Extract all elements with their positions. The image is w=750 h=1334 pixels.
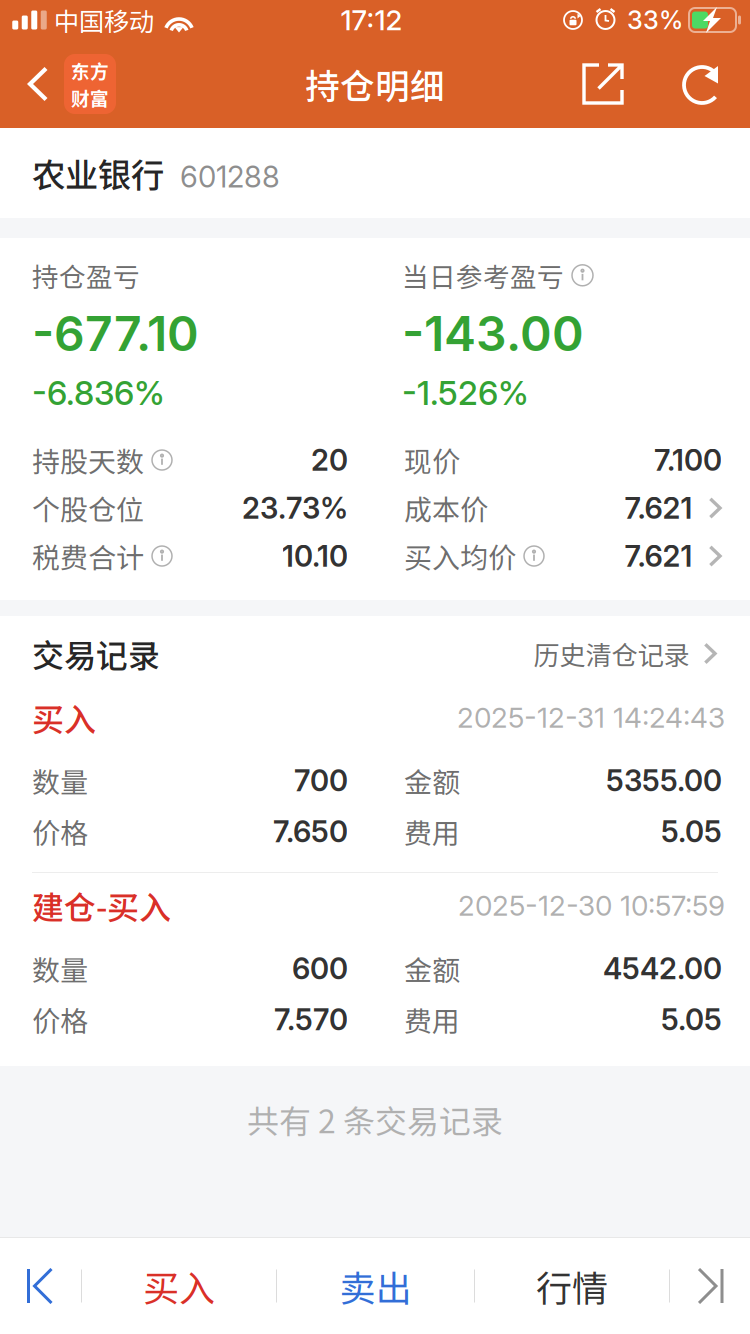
staticText: 个股仓位 <box>32 488 144 528</box>
staticText: 7.100 <box>654 442 722 478</box>
staticText: 10.10 <box>282 538 348 574</box>
staticText: 卖出 <box>339 1260 411 1312</box>
staticText: 4542.00 <box>603 951 722 986</box>
button[interactable]: 行情 <box>475 1238 669 1334</box>
staticText: 财富 <box>71 84 109 111</box>
staticText: 买入 <box>32 694 96 741</box>
staticText: 现价 <box>404 440 460 480</box>
staticText: 交易记录 <box>32 630 160 677</box>
staticText: 共有 2 条交易记录 <box>247 1096 503 1142</box>
staticText: 600 <box>292 951 348 986</box>
staticText: 17:12 <box>340 3 402 37</box>
staticText: 持仓盈亏 <box>32 256 140 295</box>
staticText: 历史清仓记录 <box>534 635 690 672</box>
staticText: 税费合计 <box>32 536 144 576</box>
staticText: 成本价 <box>404 488 488 528</box>
button[interactable]: Last <box>670 1238 750 1334</box>
staticText: 金额 <box>404 948 460 989</box>
staticText: 33% <box>627 5 683 35</box>
staticText: 2025-12-31 14:24:43 <box>457 701 725 734</box>
staticText: 中国移动 <box>54 2 154 38</box>
staticText: 价格 <box>32 811 88 852</box>
staticText: 7.621 <box>625 538 693 574</box>
staticText: 20 <box>311 442 348 478</box>
staticText: 行情 <box>536 1260 608 1312</box>
button[interactable]: 历史清仓记录 <box>534 622 717 684</box>
staticText: 5.05 <box>661 814 722 849</box>
button[interactable]: First <box>0 1238 81 1334</box>
staticText: 费用 <box>404 999 460 1040</box>
button[interactable]: 现价 <box>404 436 722 484</box>
staticText: 价格 <box>32 999 88 1040</box>
button[interactable]: Back <box>0 40 116 128</box>
staticText: 持仓明细 <box>305 59 445 109</box>
staticText: 5355.00 <box>606 763 722 798</box>
staticText: 持股天数 <box>32 440 144 480</box>
staticText: 费用 <box>404 811 460 852</box>
button[interactable]: Refresh <box>665 40 743 128</box>
staticText: 7.650 <box>273 814 348 849</box>
staticText: 5.05 <box>661 1002 722 1037</box>
staticText: 数量 <box>32 760 88 801</box>
staticText: 2025-12-30 10:57:59 <box>458 889 725 922</box>
button[interactable]: Share <box>541 40 665 128</box>
staticText: 7.621 <box>625 490 693 526</box>
staticText: 农业银行 <box>32 149 164 197</box>
staticText: 金额 <box>404 760 460 801</box>
staticText: -143.00 <box>402 305 584 363</box>
staticText: 700 <box>294 763 348 798</box>
staticText: 买入均价 <box>404 536 516 576</box>
staticText: -6.836% <box>32 373 165 413</box>
button[interactable]: 卖出 <box>277 1238 474 1334</box>
staticText: 买入 <box>143 1260 215 1312</box>
button[interactable]: 买入均价 <box>404 532 722 580</box>
staticText: 建仓-买入 <box>32 882 171 929</box>
button[interactable]: 成本价 <box>404 484 722 532</box>
staticText: -1.526% <box>402 373 529 413</box>
staticText: 东方 <box>71 57 109 84</box>
staticText: 7.570 <box>274 1002 348 1037</box>
staticText: 601288 <box>180 159 280 195</box>
staticText: 23.73% <box>242 490 348 526</box>
staticText: 当日参考盈亏 <box>402 256 564 295</box>
staticText: 数量 <box>32 948 88 989</box>
staticText: -677.10 <box>32 305 199 363</box>
button[interactable]: 买入 <box>82 1238 276 1334</box>
